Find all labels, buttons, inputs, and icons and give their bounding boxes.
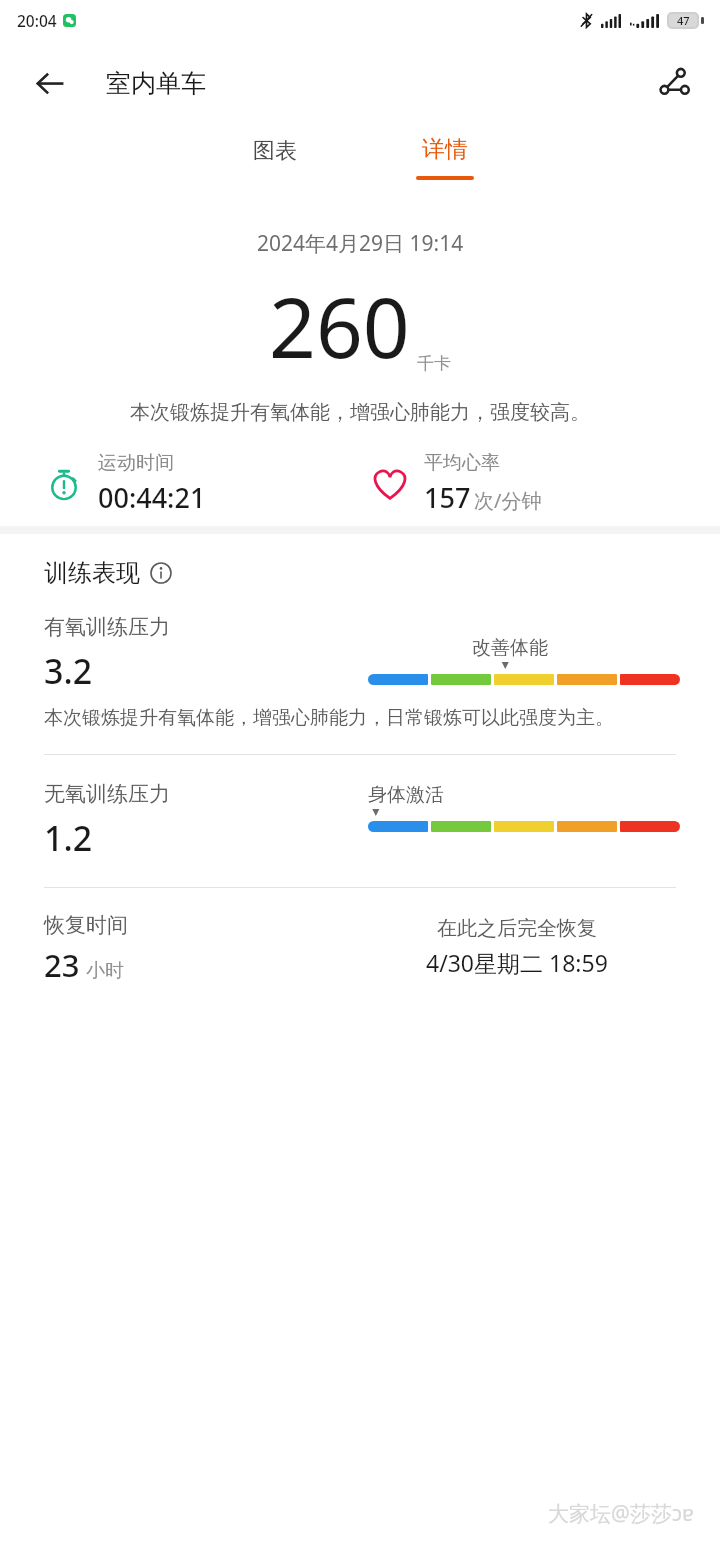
staticText: 训练表现 bbox=[44, 558, 140, 588]
other: Info bbox=[150, 562, 172, 584]
staticText: 室内单车 bbox=[106, 68, 206, 99]
staticText: 图表 bbox=[253, 137, 297, 165]
staticText: 20:04 bbox=[17, 10, 57, 31]
staticText: 260 bbox=[269, 270, 410, 382]
staticText: 身体激活 bbox=[368, 783, 444, 807]
staticText: 4/30星期二 18:59 bbox=[426, 947, 608, 978]
staticText: 1.2 bbox=[44, 815, 93, 861]
button[interactable]: 训练表现 bbox=[44, 558, 172, 588]
staticText: 大家坛@莎莎ɔɐ bbox=[548, 1499, 694, 1528]
button[interactable]: Share bbox=[650, 59, 698, 107]
staticText: 运动时间 bbox=[98, 451, 174, 475]
staticText: 改善体能 bbox=[472, 636, 548, 660]
staticText: 小时 bbox=[86, 959, 124, 983]
button[interactable]: 详情 bbox=[360, 125, 530, 199]
staticText: 2024年4月29日 19:14 bbox=[257, 229, 464, 258]
button[interactable]: Back bbox=[26, 59, 74, 107]
staticText: 恢复时间 bbox=[44, 912, 128, 938]
staticText: 3.2 bbox=[44, 648, 93, 694]
staticText: 次/分钟 bbox=[474, 487, 542, 514]
staticText: 00:44:21 bbox=[98, 479, 206, 516]
staticText: 平均心率 bbox=[424, 451, 500, 475]
staticText: 千卡 bbox=[417, 353, 451, 374]
staticText: 本次锻炼提升有氧体能，增强心肺能力，日常锻炼可以此强度为主。 bbox=[44, 706, 614, 730]
staticText: 47 bbox=[677, 13, 690, 28]
staticText: 有氧训练压力 bbox=[44, 614, 170, 640]
staticText: 无氧训练压力 bbox=[44, 781, 170, 807]
staticText: 157 bbox=[424, 479, 471, 516]
staticText: 详情 bbox=[422, 135, 468, 164]
button[interactable]: 平均心率 bbox=[368, 451, 720, 516]
button[interactable]: 运动时间 bbox=[42, 451, 360, 516]
staticText: 本次锻炼提升有氧体能，增强心肺能力，强度较高。 bbox=[130, 400, 590, 425]
staticText: 23 bbox=[44, 944, 80, 986]
staticText: 在此之后完全恢复 bbox=[437, 916, 597, 941]
button[interactable]: 图表 bbox=[190, 125, 360, 199]
